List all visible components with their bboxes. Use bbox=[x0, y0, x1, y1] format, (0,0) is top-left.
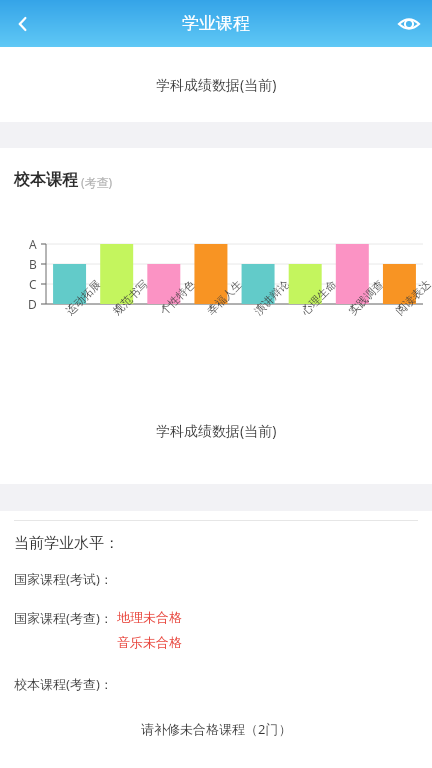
staticText: 音乐未合格 bbox=[117, 634, 182, 650]
staticText: 国家课程(考试)： bbox=[14, 570, 113, 588]
staticText: 地理未合格 bbox=[117, 609, 182, 625]
staticText: 学科成绩数据(当前) bbox=[156, 421, 277, 440]
staticText: (考查) bbox=[81, 174, 113, 190]
staticText: 校本课程 bbox=[14, 170, 78, 190]
staticText: 学科成绩数据(当前) bbox=[156, 75, 277, 94]
button[interactable]: Preview bbox=[386, 1, 432, 47]
staticText: 国家课程(考查)： bbox=[14, 609, 113, 627]
button[interactable]: Back bbox=[0, 1, 46, 47]
staticText: 请补修未合格课程（2门） bbox=[141, 720, 292, 738]
staticText: 学业课程 bbox=[182, 13, 250, 34]
staticText: 校本课程(考查)： bbox=[14, 675, 113, 693]
staticText: 当前学业水平： bbox=[14, 534, 119, 553]
